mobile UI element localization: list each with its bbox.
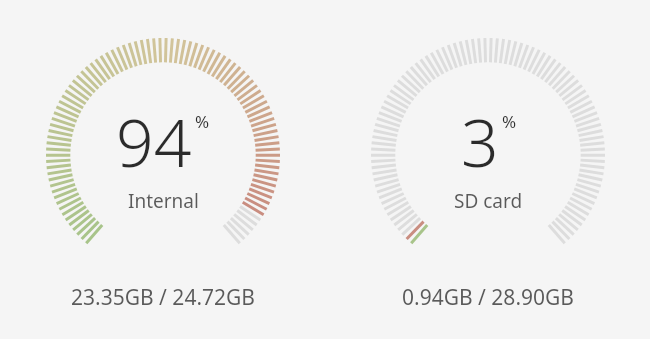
staticText: 0.94GB / 28.90GB	[402, 283, 574, 312]
staticText: %	[502, 110, 517, 133]
staticText: 3	[461, 96, 499, 186]
button[interactable]: Internal storage 94 percent used	[45, 37, 281, 273]
staticText: Internal	[128, 188, 199, 214]
staticText: 94	[116, 96, 192, 186]
staticText: %	[195, 110, 210, 133]
staticText: SD card	[454, 188, 523, 214]
button[interactable]: SD card storage 3 percent used	[370, 37, 606, 273]
staticText: 23.35GB / 24.72GB	[71, 283, 255, 312]
